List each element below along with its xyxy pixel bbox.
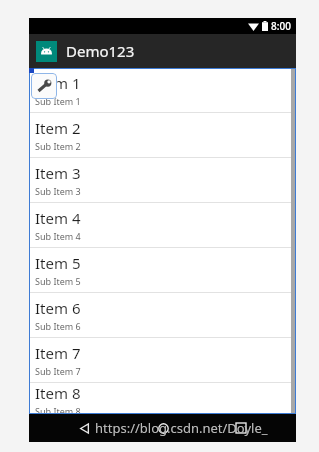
button[interactable]: Item 2	[29, 113, 296, 157]
button[interactable]: Item 5	[29, 248, 296, 292]
staticText: Item 6	[35, 298, 81, 318]
staticText: Sub Item 3	[35, 185, 81, 197]
staticText: Item 8	[35, 383, 81, 403]
button[interactable]: Back	[71, 415, 97, 441]
button[interactable]: Item 8	[29, 383, 296, 414]
staticText: Item 5	[35, 253, 81, 273]
button[interactable]: Item 6	[29, 293, 296, 337]
staticText: Sub Item 4	[35, 230, 81, 242]
staticText: Item 1	[35, 73, 81, 93]
button[interactable]: Layout inspector	[31, 73, 57, 99]
staticText: Sub Item 8	[35, 405, 81, 414]
staticText: Item 7	[35, 343, 81, 363]
staticText: Sub Item 2	[35, 140, 81, 152]
button[interactable]: Item 3	[29, 158, 296, 202]
staticText: Sub Item 5	[35, 275, 81, 287]
staticText: Item 4	[35, 208, 81, 228]
button[interactable]: Item 7	[29, 338, 296, 382]
staticText: Item 2	[35, 118, 81, 138]
staticText: Sub Item 7	[35, 365, 81, 377]
staticText: Item 3	[35, 163, 81, 183]
staticText: 8:00	[271, 19, 291, 33]
staticText: Demo123	[66, 41, 135, 61]
staticText: https://blog.csdn.net/Doyle_	[95, 419, 268, 437]
button[interactable]: Item 1	[29, 68, 296, 112]
button[interactable]: Item 4	[29, 203, 296, 247]
button[interactable]: Home	[150, 415, 176, 441]
staticText: Sub Item 6	[35, 320, 81, 332]
button[interactable]: Recents	[228, 415, 254, 441]
button[interactable]: App icon	[36, 41, 57, 62]
staticText: Sub Item 1	[35, 95, 81, 107]
